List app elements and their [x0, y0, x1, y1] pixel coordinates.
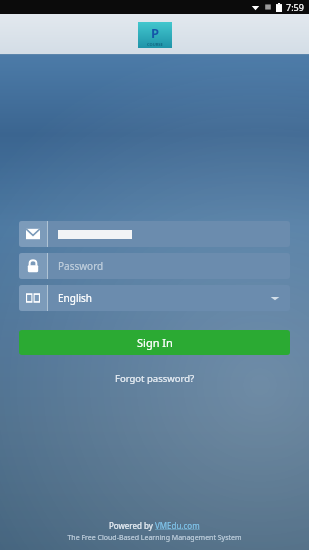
button[interactable]: VMEdu.com [155, 520, 200, 531]
staticText: English [58, 291, 93, 305]
staticText: P [151, 24, 160, 42]
button[interactable]: Language [19, 285, 290, 311]
staticText: Powered by [109, 520, 155, 531]
staticText: The Free Cloud-Based Learning Management… [67, 533, 242, 543]
staticText: VMEdu.com [155, 520, 200, 531]
staticText: 7:59 [286, 1, 304, 13]
staticText: Password [58, 259, 104, 273]
button[interactable]: PCourse logo [138, 22, 172, 48]
button[interactable]: Forgot password? [111, 368, 199, 389]
staticText: Sign In [137, 335, 173, 350]
other: Email [19, 221, 47, 247]
button[interactable]: Email [19, 221, 290, 247]
staticText: COURSE [147, 42, 163, 47]
other: Language [19, 285, 47, 311]
other: Password [19, 253, 47, 279]
button[interactable]: Sign In [19, 330, 290, 355]
button[interactable]: Password [19, 253, 290, 279]
staticText: Forgot password? [115, 372, 195, 385]
